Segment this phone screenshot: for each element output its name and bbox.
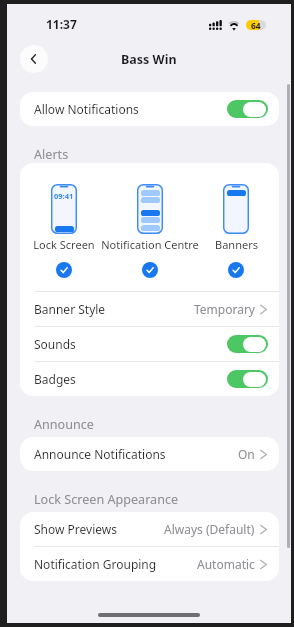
staticText: 64 [251,20,261,30]
staticText: On [238,446,255,462]
staticText: Bass Win [121,51,177,68]
staticText: Lock Screen Appearance [34,491,179,508]
staticText: Banner Style [34,301,106,317]
staticText: Temporary [194,301,255,317]
staticText: Badges [34,371,76,387]
staticText: Always (Default) [164,521,255,537]
button[interactable]: Announce Notifications [20,437,279,471]
staticText: Announce [34,416,94,433]
button[interactable]: 09:41 [20,163,107,278]
staticText: 09:41 [54,191,74,201]
staticText: Announce Notifications [34,446,166,462]
button[interactable]: Back [20,45,48,73]
button[interactable]: Notification Centre [107,163,193,278]
staticText: Show Previews [34,521,117,537]
staticText: Banners [215,237,258,250]
staticText: Sounds [34,336,76,352]
staticText: Notification Centre [101,237,199,250]
button[interactable]: Sounds [20,327,279,361]
button[interactable]: Show Previews [20,512,279,546]
button[interactable]: Banner Style [20,292,279,326]
button[interactable]: Notification Grouping [20,547,279,581]
staticText: Automatic [197,556,255,572]
staticText: Alerts [34,146,69,163]
button[interactable]: Banners [193,163,279,278]
staticText: 11:37 [46,16,77,32]
staticText: Notification Grouping [34,556,157,572]
staticText: Lock Screen [33,237,95,250]
staticText: Allow Notifications [34,101,139,117]
button[interactable]: Badges [20,362,279,396]
button[interactable]: Allow Notifications [20,92,279,126]
